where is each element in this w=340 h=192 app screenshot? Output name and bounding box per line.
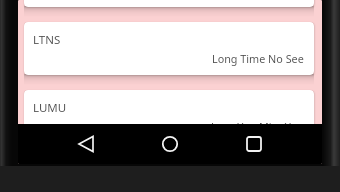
button[interactable]: LOL (24, 0, 314, 7)
staticText: Love You Miss You (211, 119, 304, 134)
button[interactable]: Back (66, 124, 106, 164)
button[interactable]: LUMU (24, 90, 314, 143)
button[interactable]: Home (150, 124, 190, 164)
button[interactable]: LTNS (24, 22, 314, 75)
staticText: LUMU (33, 100, 67, 116)
staticText: LTNS (33, 32, 61, 48)
staticText: Long Time No See (212, 51, 304, 66)
button[interactable]: Recent apps (234, 124, 274, 164)
